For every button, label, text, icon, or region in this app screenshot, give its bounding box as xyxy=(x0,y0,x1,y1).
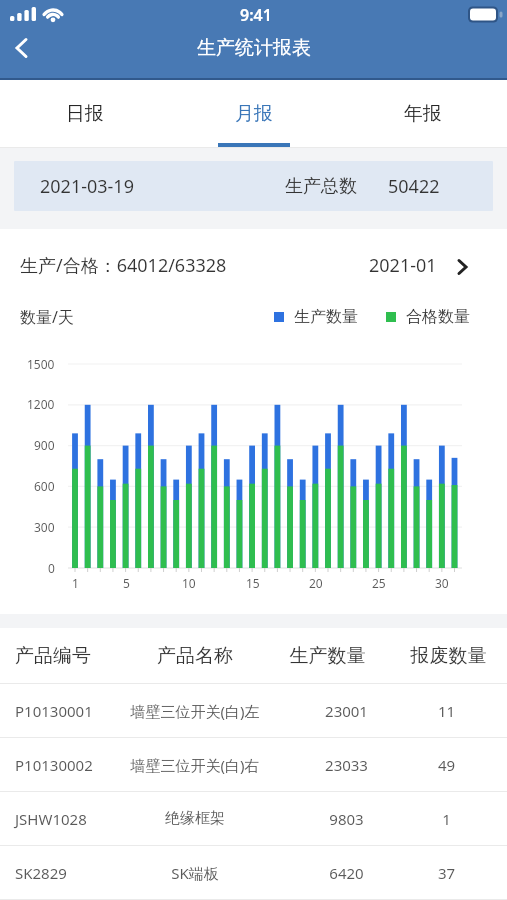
staticText: 600 xyxy=(34,478,55,494)
staticText: 1 xyxy=(72,575,79,591)
staticText: 9803 xyxy=(265,809,428,829)
staticText: 25 xyxy=(372,575,386,591)
staticText: 9:41 xyxy=(240,4,272,26)
staticText: 11 xyxy=(428,701,465,721)
button[interactable]: P10130001 xyxy=(0,684,507,737)
staticText: 产品名称 xyxy=(125,644,265,668)
staticText: 数量/天 xyxy=(20,306,74,328)
staticText: 37 xyxy=(428,863,465,883)
staticText: SK端板 xyxy=(125,863,265,883)
staticText: 月报 xyxy=(235,102,273,126)
staticText: 15 xyxy=(246,575,260,591)
staticText: 30 xyxy=(435,575,449,591)
button[interactable]: SK2829 xyxy=(0,846,507,899)
staticText: 6420 xyxy=(265,863,428,883)
button[interactable]: 生产/合格：64012/63328 xyxy=(20,253,487,278)
staticText: 0 xyxy=(48,560,55,576)
staticText: 绝缘框架 xyxy=(125,809,265,828)
staticText: 生产数量 xyxy=(294,307,358,327)
staticText: 合格数量 xyxy=(406,307,470,327)
staticText: 报废数量 xyxy=(390,644,507,668)
staticText: 日报 xyxy=(66,102,104,126)
button[interactable]: 日报 xyxy=(0,80,169,148)
button[interactable]: 产品编号 xyxy=(0,628,507,683)
staticText: 2021-03-19 xyxy=(40,174,134,199)
button[interactable]: 2021-03-19 xyxy=(14,161,493,211)
staticText: 2021-01 xyxy=(369,253,437,278)
button[interactable] xyxy=(0,29,46,67)
staticText: 23001 xyxy=(265,701,428,721)
staticText: P10130001 xyxy=(15,701,125,721)
button[interactable]: JSHW1028 xyxy=(0,792,507,845)
staticText: 产品编号 xyxy=(15,644,125,668)
staticText: 生产/合格：64012/63328 xyxy=(20,253,227,278)
staticText: 10 xyxy=(182,575,196,591)
staticText: 20 xyxy=(309,575,323,591)
button[interactable]: P10130002 xyxy=(0,738,507,791)
staticText: 49 xyxy=(428,755,465,775)
staticText: 900 xyxy=(34,437,55,453)
button[interactable]: 年报 xyxy=(338,80,507,148)
staticText: SK2829 xyxy=(15,863,125,883)
staticText: 1200 xyxy=(27,396,55,412)
staticText: 1 xyxy=(428,809,465,829)
staticText: JSHW1028 xyxy=(15,809,125,829)
button[interactable]: 月报 xyxy=(169,80,338,148)
staticText: 1500 xyxy=(27,356,55,372)
staticText: P10130002 xyxy=(15,755,125,775)
staticText: 生产数量 xyxy=(265,644,390,668)
staticText: 年报 xyxy=(404,102,442,126)
staticText: 300 xyxy=(34,519,55,535)
staticText: 5 xyxy=(123,575,130,591)
staticText: 生产统计报表 xyxy=(197,36,311,60)
staticText: 生产总数 xyxy=(285,175,357,198)
staticText: 50422 xyxy=(388,174,440,199)
staticText: 23033 xyxy=(265,755,428,775)
staticText: 墙壁三位开关(白)右 xyxy=(125,755,265,775)
staticText: 墙壁三位开关(白)左 xyxy=(125,701,265,721)
